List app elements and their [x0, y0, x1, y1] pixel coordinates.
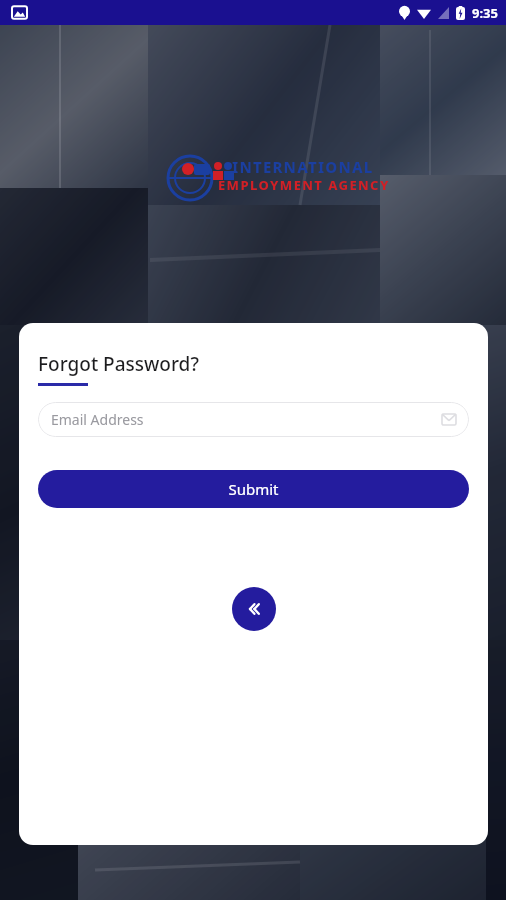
staticText: Submit	[228, 479, 279, 499]
button[interactable]: Submit	[38, 470, 469, 508]
staticText: EMPLOYMENT AGENCY	[218, 176, 390, 194]
staticText: Email Address	[51, 410, 144, 429]
staticText: INTERNATIONAL	[232, 157, 374, 177]
button[interactable]: Back	[232, 587, 276, 631]
button[interactable]: Email Address	[38, 402, 469, 437]
staticText: 9:35	[472, 4, 498, 22]
staticText: Forgot Password?	[38, 351, 199, 377]
